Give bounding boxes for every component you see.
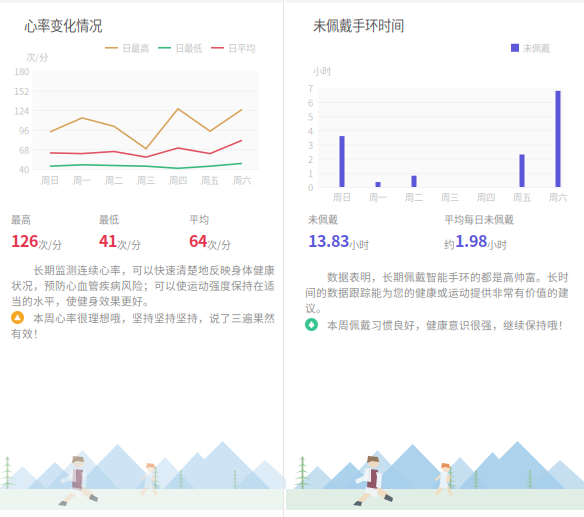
staticText: 41 [99,228,117,252]
staticText: 2 [308,152,313,166]
staticText: 7 [308,81,313,95]
staticText: 周二 [105,173,123,186]
staticText: 次/分 [207,237,231,252]
staticText: 180 [14,64,29,78]
staticText: 最高 [11,212,31,226]
staticText: 小时 [349,237,369,252]
staticText: 平均 [189,212,209,226]
staticText: 5 [308,110,313,123]
staticText: 约 [444,236,455,252]
staticText: 平均每日未佩戴 [444,212,514,226]
staticText: 周五 [513,190,531,203]
staticText: 未佩戴 [308,212,338,226]
staticText: 小时 [313,64,331,77]
staticText: 长期监测连续心率，可以快速清楚地反映身体健康状况，预防心血管疾病风险；可以使运动… [11,262,275,308]
staticText: 126 [11,228,38,252]
staticText: 日最低 [175,41,202,54]
staticText: 3 [308,138,313,152]
staticText: 数据表明，长期佩戴智能手环的都是高帅富。长时间的数据跟踪能为您的健康或运动提供非… [305,269,569,315]
staticText: 次/分 [26,50,48,63]
staticText: 周一 [73,173,91,186]
staticText: 周日 [333,190,351,203]
staticText: 未佩戴手环时间 [313,15,404,34]
staticText: 次/分 [117,237,141,252]
staticText: 周六 [549,190,567,203]
staticText: 0 [308,180,313,194]
staticText: 本周心率很理想哦，坚持坚持坚持，说了三遍果然有效！ [11,310,275,341]
staticText: 次/分 [38,237,62,252]
staticText: 124 [14,104,29,117]
staticText: 周日 [41,173,59,186]
staticText: 4 [308,124,313,137]
staticText: 152 [14,84,29,98]
staticText: 未佩戴 [523,41,550,54]
staticText: 6 [308,96,313,109]
staticText: 周六 [233,173,251,186]
staticText: 40 [19,162,29,176]
staticText: 13.83 [308,228,349,252]
staticText: 周一 [369,190,387,203]
staticText: 1.98 [455,228,487,252]
staticText: 周五 [201,173,219,186]
staticText: 周三 [137,173,155,186]
staticText: 周四 [169,173,187,186]
staticText: 64 [189,228,207,252]
staticText: 周二 [405,190,423,203]
staticText: 日平均 [228,41,255,54]
staticText: 小时 [487,237,507,252]
staticText: 心率变化情况 [24,15,102,34]
staticText: 1 [308,166,313,180]
staticText: 周四 [477,190,495,203]
staticText: 周三 [441,190,459,203]
staticText: 日最高 [122,41,149,54]
staticText: 68 [19,143,29,156]
staticText: 本周佩戴习惯良好，健康意识很强，继续保持哦！ [305,317,569,332]
staticText: 96 [19,123,29,137]
staticText: 最低 [99,212,119,226]
